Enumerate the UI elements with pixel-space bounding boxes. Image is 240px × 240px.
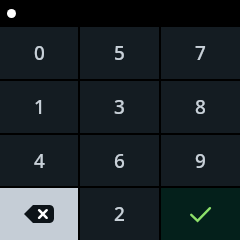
button[interactable]: 0 [0,27,78,79]
button[interactable]: 1 [0,81,78,133]
staticText: 6 [114,148,125,174]
button[interactable]: 5 [80,27,159,79]
staticText: 5 [114,40,125,66]
staticText: 1 [34,94,45,120]
button[interactable]: 6 [80,135,159,186]
staticText: 8 [195,94,206,120]
staticText: 0 [34,40,45,66]
button[interactable]: Confirm [161,188,240,240]
button[interactable]: 3 [80,81,159,133]
staticText: 3 [114,94,125,120]
staticText: 7 [195,40,206,66]
button[interactable]: 7 [161,27,240,79]
staticText: 4 [34,148,45,174]
staticText: 9 [195,148,206,174]
button[interactable]: 9 [161,135,240,186]
button[interactable]: 4 [0,135,78,186]
button[interactable]: 8 [161,81,240,133]
staticText: 2 [114,201,125,227]
button[interactable]: Backspace [0,188,78,240]
button[interactable]: 2 [80,188,159,240]
